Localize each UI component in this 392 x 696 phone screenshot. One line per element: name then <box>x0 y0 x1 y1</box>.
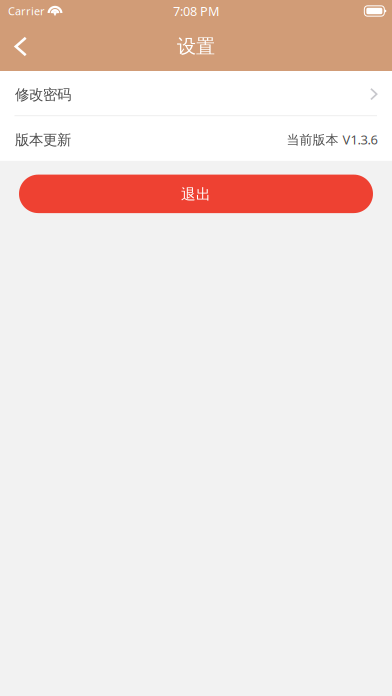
staticText: 版本更新 <box>15 131 71 149</box>
staticText: 设置 <box>177 34 215 58</box>
button[interactable]: 版本更新 <box>0 116 392 161</box>
button[interactable]: Back <box>0 22 45 71</box>
staticText: 当前版本 V1.3.6 <box>286 131 377 148</box>
staticText: 退出 <box>181 185 211 204</box>
staticText: 7:08 PM <box>173 2 219 20</box>
button[interactable]: 修改密码 <box>0 71 392 115</box>
button[interactable]: 退出 <box>19 175 373 213</box>
staticText: Carrier <box>8 4 45 18</box>
staticText: 修改密码 <box>15 85 71 104</box>
